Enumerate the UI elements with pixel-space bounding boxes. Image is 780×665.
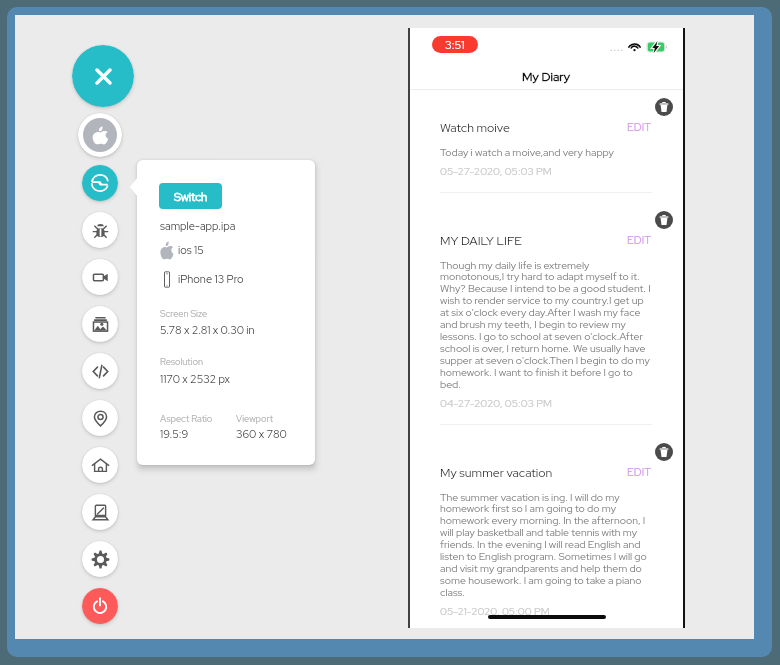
staticText: sample-app.ipa [160,219,236,234]
button[interactable]: Sync [82,165,118,201]
button[interactable]: Device logs [82,494,118,530]
staticText: iPhone 13 Pro [178,272,244,287]
staticText: 1170 x 2532 px [160,372,230,387]
staticText: Aspect Ratio [160,413,213,425]
staticText: Watch moive [440,119,510,135]
staticText: My Diary [522,68,571,84]
button[interactable]: Record video [82,259,118,295]
button[interactable]: Settings [82,541,118,577]
button[interactable]: EDIT [627,233,652,248]
staticText: 360 x 780 [236,427,287,442]
staticText: EDIT [627,465,652,480]
button[interactable]: Screenshot [82,306,118,342]
staticText: 04-27-2020, 05:03 PM [440,396,552,410]
staticText: The summer vacation is ing. I will do my… [440,490,652,599]
button[interactable]: Delete entry [655,443,673,461]
staticText: Today i watch a moive,and very happy [440,145,614,159]
staticText: Screen Size [160,308,208,320]
button[interactable]: Location [82,400,118,436]
staticText: 5.78 x 2.81 x 0.30 in [160,323,255,338]
staticText: Switch [174,189,208,204]
staticText: 19.5:9 [160,427,189,442]
staticText: 05-21-2020, 05:00 PM [440,604,550,618]
staticText: 3:51 [445,37,465,52]
staticText: Though my daily life is extremely monoto… [440,258,652,391]
staticText: MY DAILY LIFE [440,232,522,248]
button[interactable]: iOS platform [78,113,122,157]
staticText: EDIT [627,120,652,135]
button[interactable]: Inspect code [82,353,118,389]
button[interactable]: EDIT [627,465,652,480]
staticText: My summer vacation [440,464,553,480]
staticText: ios 15 [178,243,204,258]
button[interactable]: Close [72,45,134,107]
staticText: 05-27-2020, 05:03 PM [440,164,552,178]
button[interactable]: Delete entry [655,211,673,229]
button[interactable]: EDIT [627,120,652,135]
staticText: Viewport [236,413,274,425]
button[interactable]: Power off [82,588,118,624]
staticText: EDIT [627,233,652,248]
button[interactable]: Home [82,447,118,483]
button[interactable]: Delete entry [655,98,673,116]
staticText: Resolution [160,356,204,368]
button[interactable]: Switch [159,183,222,209]
button[interactable]: Bug report [82,212,118,248]
